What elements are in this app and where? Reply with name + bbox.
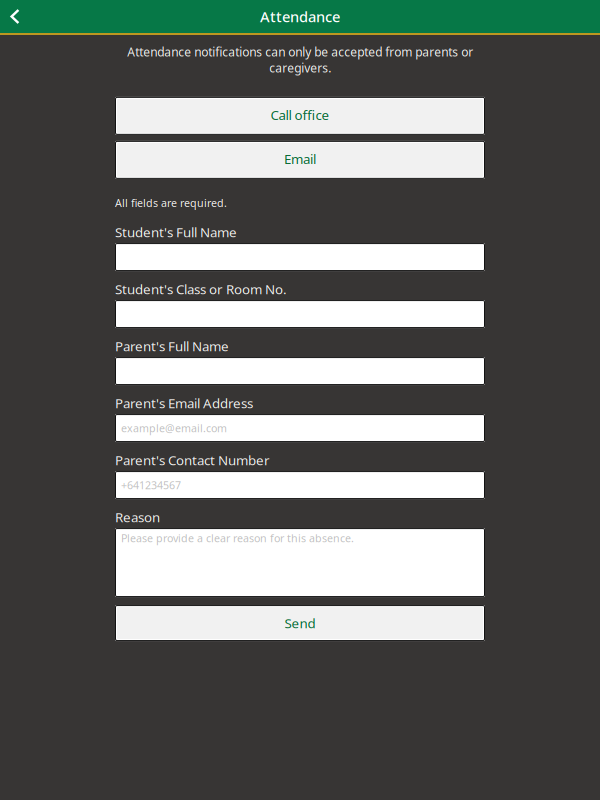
- staticText: Parent's Contact Number: [115, 451, 270, 469]
- button[interactable]: Student's Full Name: [115, 243, 485, 271]
- button[interactable]: Student's Class or Room No.: [115, 300, 485, 328]
- button[interactable]: Email: [115, 141, 485, 179]
- button[interactable]: Reason: [115, 528, 485, 597]
- button[interactable]: Send: [115, 605, 485, 641]
- button[interactable]: Back: [0, 0, 30, 33]
- button[interactable]: Call office: [115, 97, 485, 135]
- staticText: Student's Class or Room No.: [115, 280, 287, 298]
- staticText: Email: [284, 150, 316, 168]
- staticText: Parent's Full Name: [115, 337, 229, 355]
- button[interactable]: Parent's Email Address: [115, 414, 485, 442]
- staticText: Send: [284, 614, 315, 632]
- button[interactable]: Parent's Full Name: [115, 357, 485, 385]
- staticText: Reason: [115, 508, 160, 526]
- staticText: Call office: [270, 106, 329, 124]
- staticText: Attendance notifications can only be acc…: [127, 44, 473, 76]
- staticText: Please provide a clear reason for this a…: [121, 531, 354, 545]
- staticText: Parent's Email Address: [115, 394, 253, 412]
- staticText: Student's Full Name: [115, 223, 237, 241]
- staticText: Attendance: [260, 7, 340, 26]
- button[interactable]: Parent's Contact Number: [115, 471, 485, 499]
- staticText: example@email.com: [121, 421, 227, 435]
- staticText: All fields are required.: [115, 196, 227, 210]
- staticText: +641234567: [121, 478, 181, 492]
